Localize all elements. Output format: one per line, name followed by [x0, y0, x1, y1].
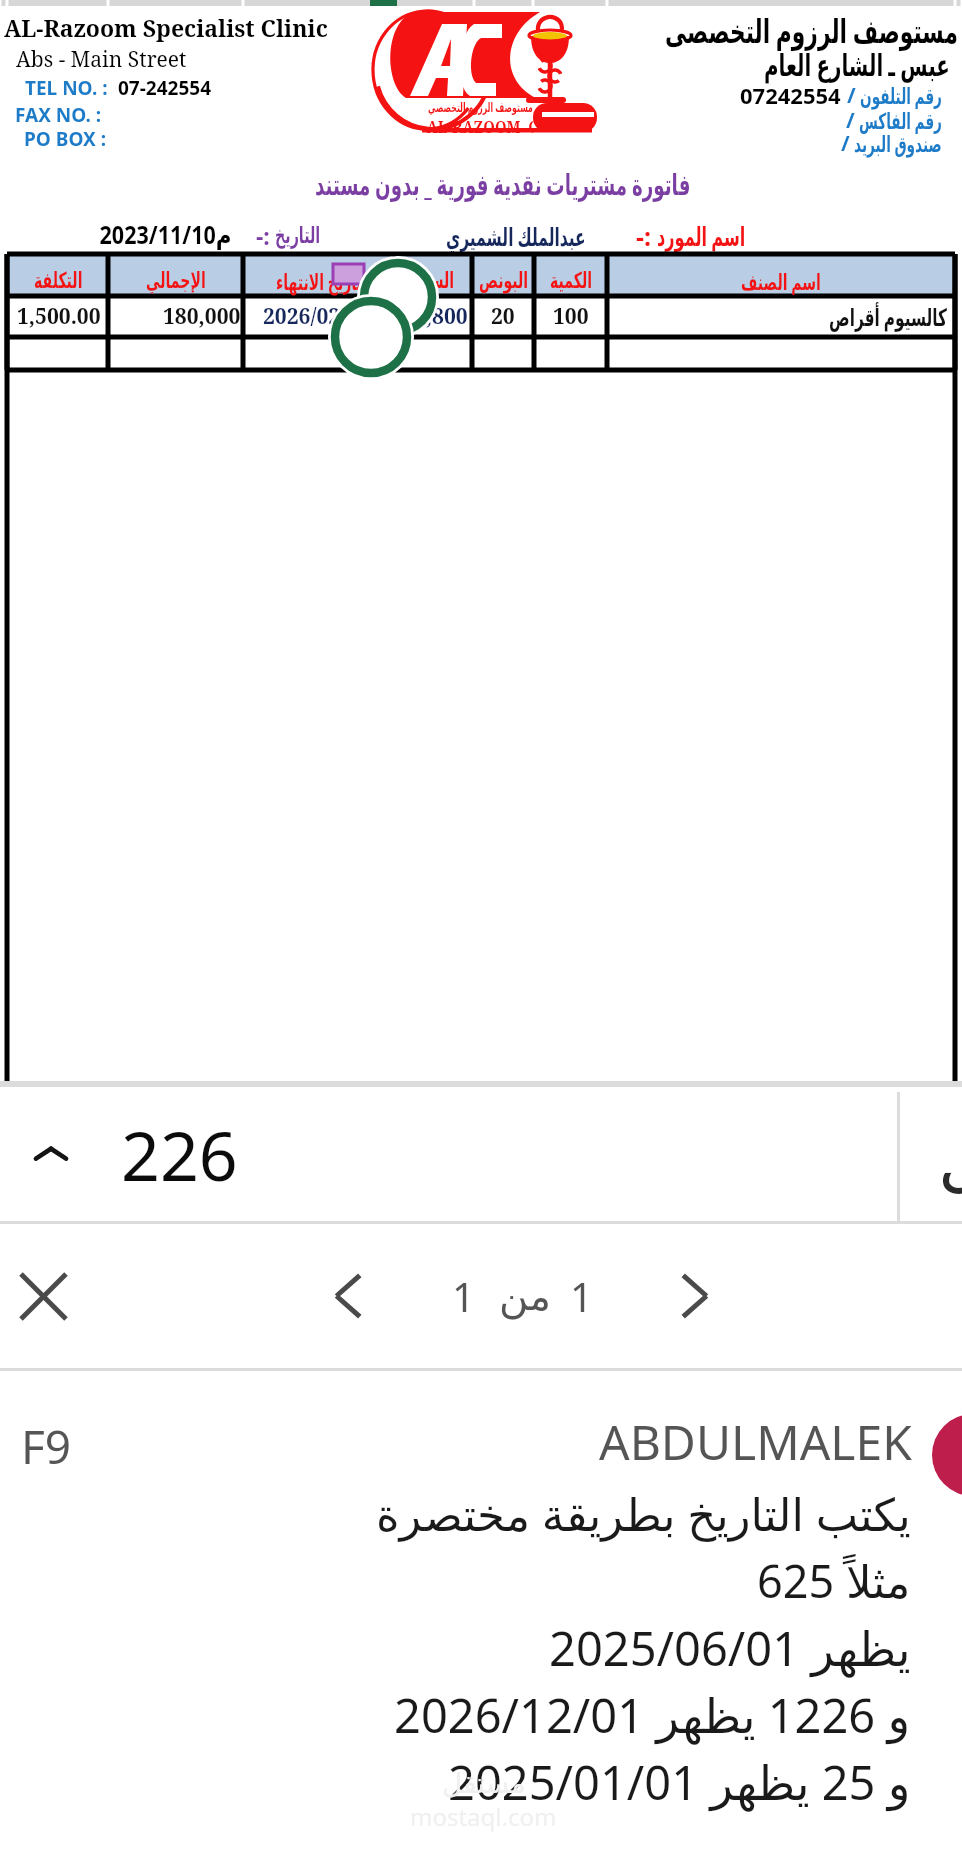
staticText: AL-RAZOOM CLINIC	[427, 116, 533, 138]
staticText: رقم التلفون	[860, 80, 942, 110]
staticText: mostaql.com	[410, 1800, 557, 1833]
staticText: اسم الصنف	[741, 266, 821, 296]
staticText: مستوصف الرزوم التخصصى	[665, 8, 958, 53]
staticText: -:	[636, 219, 652, 253]
staticText: و 25 يظهر 2025/01/01	[448, 1750, 911, 1814]
staticText: Abs - Main Street	[16, 45, 187, 74]
staticText: 1,800	[414, 302, 468, 331]
staticText: الكمية	[550, 268, 592, 294]
staticText: 2026/02/01	[263, 302, 371, 331]
button[interactable]: Collapse	[0, 1087, 962, 1221]
staticText: FAX NO. :	[15, 102, 102, 128]
staticText: كالسيوم أقراص	[829, 300, 947, 333]
staticText: 1	[570, 1269, 593, 1323]
staticText: -:	[256, 220, 270, 251]
staticText: ل	[938, 1118, 962, 1199]
button[interactable]: Previous page	[318, 1263, 384, 1329]
staticText: 20	[491, 302, 515, 331]
staticText: 07242554	[740, 80, 841, 110]
staticText: مثلاً 625	[757, 1550, 911, 1611]
staticText: /	[841, 129, 850, 158]
staticText: 1,500.00	[17, 302, 101, 331]
staticText: التاريخ	[275, 222, 320, 249]
staticText: PO BOX :	[24, 126, 107, 152]
staticText: اسم المورد	[657, 218, 746, 253]
staticText: F9	[21, 1415, 72, 1478]
staticText: /	[847, 81, 856, 110]
staticText: فاتورة مشتريات نقدية فورية _ بدون مستند	[315, 164, 690, 203]
staticText: 1	[452, 1269, 475, 1323]
staticText: تاريخ الانتهاء	[276, 266, 362, 296]
staticText: مستوصف الرزوم التخصصي	[428, 98, 533, 116]
staticText: الإجمالي	[146, 268, 206, 294]
staticText: عبدالملك الشميري	[446, 219, 586, 253]
staticText: 07-242554	[118, 75, 212, 101]
staticText: يكتب التاريخ بطريقة مختصرة	[376, 1483, 911, 1544]
staticText: البونص	[479, 268, 528, 294]
staticText: و 1226 يظهر 2026/12/01	[394, 1683, 911, 1747]
staticText: رقم الفاكس	[859, 105, 942, 135]
other: Collapse	[22, 1125, 80, 1183]
staticText: ABDULMALEK	[599, 1409, 912, 1474]
button[interactable]: Close	[8, 1261, 78, 1331]
staticText: من	[499, 1273, 551, 1320]
staticText: عبس ـ الشارع العام	[764, 44, 950, 85]
staticText: مستقل	[442, 1767, 526, 1800]
staticText: 226	[121, 1108, 238, 1201]
staticText: AL-Razoom Specialist Clinic	[4, 12, 328, 43]
staticText: م2023/11/10	[100, 217, 232, 251]
staticText: 180,000	[163, 302, 241, 331]
staticText: TEL NO. :	[25, 75, 108, 101]
staticText: التكلفة	[34, 268, 83, 294]
staticText: صندوق البريد	[854, 128, 942, 158]
staticText: يظهر 2025/06/01	[549, 1616, 911, 1680]
staticText: /	[846, 106, 855, 135]
staticText: السعر	[413, 268, 455, 294]
button[interactable]: Next page	[659, 1263, 725, 1329]
staticText: 100	[553, 302, 589, 331]
